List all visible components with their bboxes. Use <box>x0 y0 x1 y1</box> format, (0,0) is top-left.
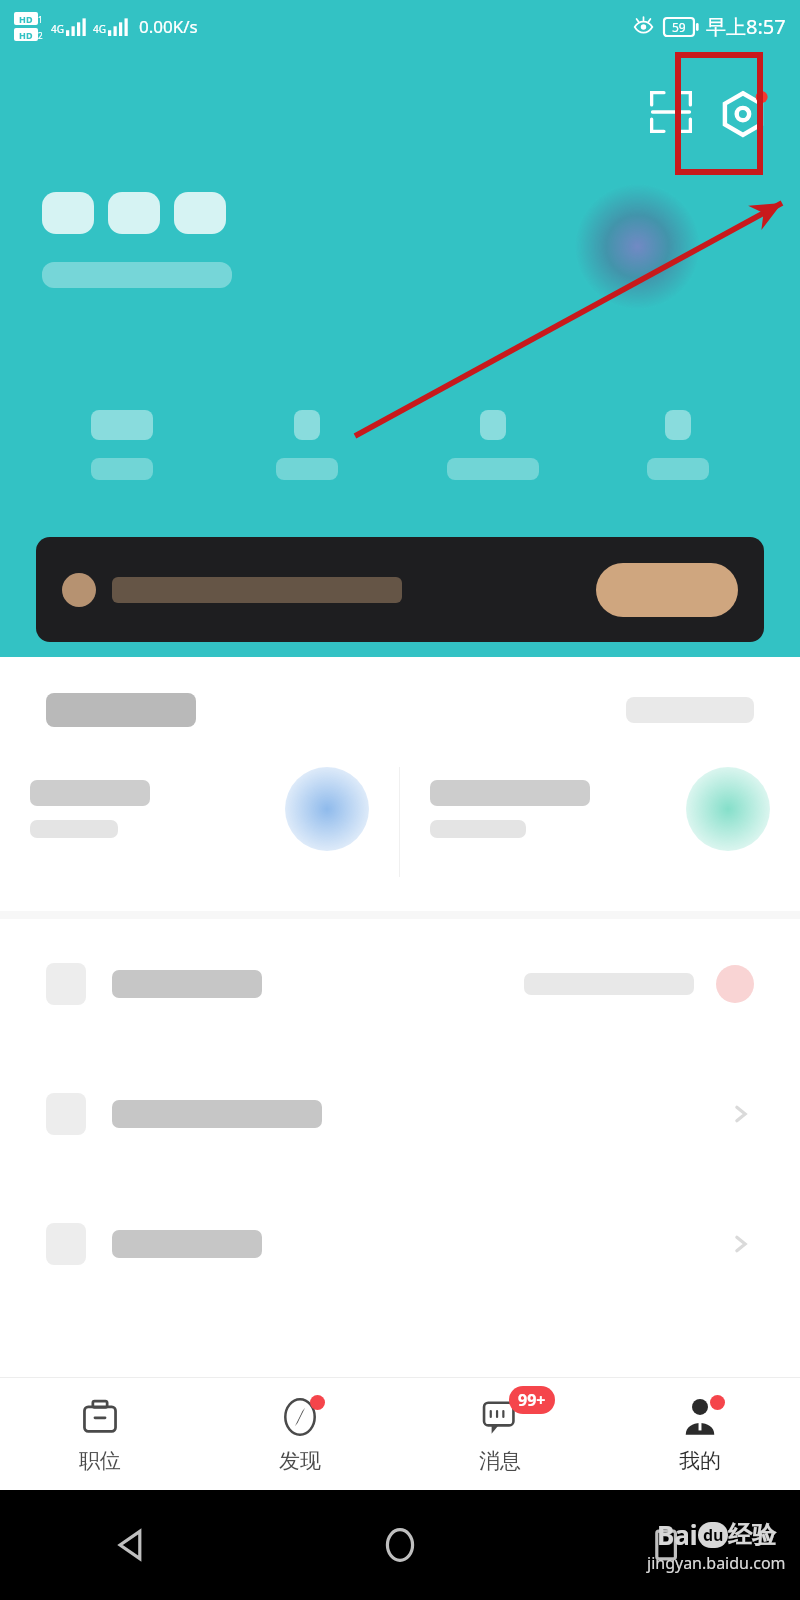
staticText: 99+ <box>518 1389 546 1411</box>
button[interactable]: 发现 <box>200 1378 400 1490</box>
button[interactable] <box>598 410 758 480</box>
staticText: 59 <box>672 19 686 35</box>
button[interactable]: Open membership <box>36 537 764 642</box>
button[interactable] <box>0 1049 800 1179</box>
button[interactable]: Back <box>103 1515 163 1575</box>
button[interactable]: 我的 <box>600 1378 800 1490</box>
button[interactable]: Home <box>370 1515 430 1575</box>
staticText: 职位 <box>79 1448 121 1474</box>
staticText: 4G <box>51 22 64 36</box>
staticText: 我的 <box>679 1448 721 1474</box>
button[interactable]: Settings <box>714 81 776 143</box>
staticText: 0.00K/s <box>139 15 198 38</box>
staticText: 消息 <box>479 1448 521 1474</box>
staticText: 早上8:57 <box>706 13 786 40</box>
button[interactable] <box>400 767 800 851</box>
button[interactable]: Scan QR code <box>640 81 702 143</box>
staticText: 4G <box>93 22 106 36</box>
staticText: HD <box>19 13 33 25</box>
button[interactable] <box>0 767 399 851</box>
button[interactable]: Open membership <box>596 563 738 617</box>
staticText: HD <box>19 29 33 41</box>
staticText: 1 <box>38 14 43 25</box>
staticText: jingyan.baidu.com <box>647 1552 786 1574</box>
button[interactable]: Recent apps <box>637 1515 697 1575</box>
staticText: 发现 <box>279 1448 321 1474</box>
button[interactable]: 99+ <box>400 1378 600 1490</box>
staticText: 经验 <box>728 1520 776 1550</box>
staticText: du <box>703 1524 724 1546</box>
staticText: 2 <box>38 30 43 41</box>
button[interactable]: 职位 <box>0 1378 200 1490</box>
button[interactable] <box>0 919 800 1049</box>
button[interactable] <box>42 410 202 480</box>
button[interactable]: Profile avatar <box>575 184 700 309</box>
button[interactable] <box>413 410 573 480</box>
button[interactable] <box>0 1179 800 1309</box>
staticText: Bai <box>657 1517 698 1552</box>
button[interactable] <box>227 410 387 480</box>
